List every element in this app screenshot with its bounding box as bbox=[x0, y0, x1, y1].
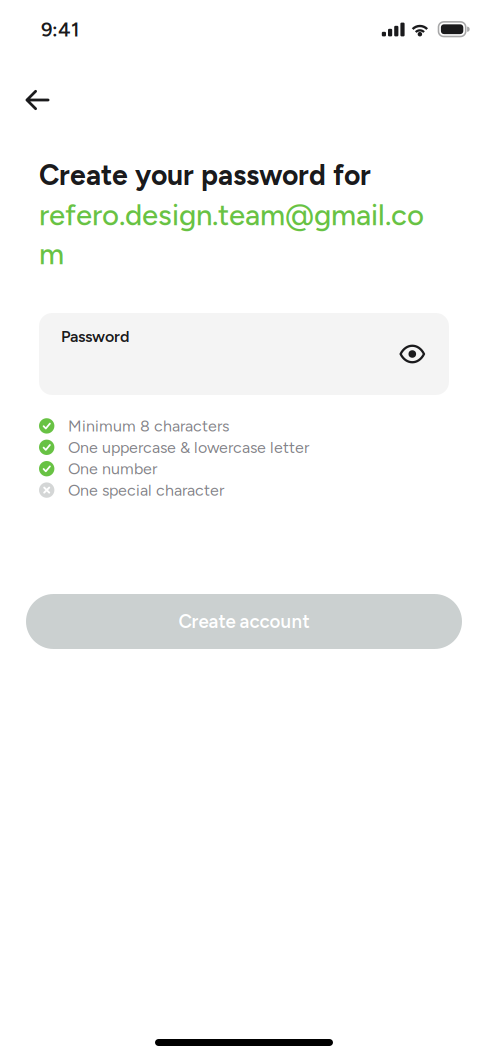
staticText: 9:41 bbox=[41, 18, 79, 42]
staticText: Minimum 8 characters bbox=[68, 416, 229, 435]
button[interactable]: Back bbox=[9, 72, 65, 128]
staticText: One special character bbox=[68, 480, 224, 500]
button[interactable]: Password bbox=[39, 313, 449, 395]
staticText: refero.design.team@gmail.co bbox=[39, 197, 424, 233]
staticText: m bbox=[39, 236, 64, 272]
button[interactable]: Create account bbox=[26, 594, 462, 649]
staticText: Password bbox=[61, 327, 129, 346]
staticText: One uppercase & lowercase letter bbox=[68, 438, 309, 457]
staticText: Create account bbox=[178, 610, 309, 633]
staticText: Create your password for bbox=[39, 158, 371, 192]
staticText: One number bbox=[68, 459, 157, 478]
